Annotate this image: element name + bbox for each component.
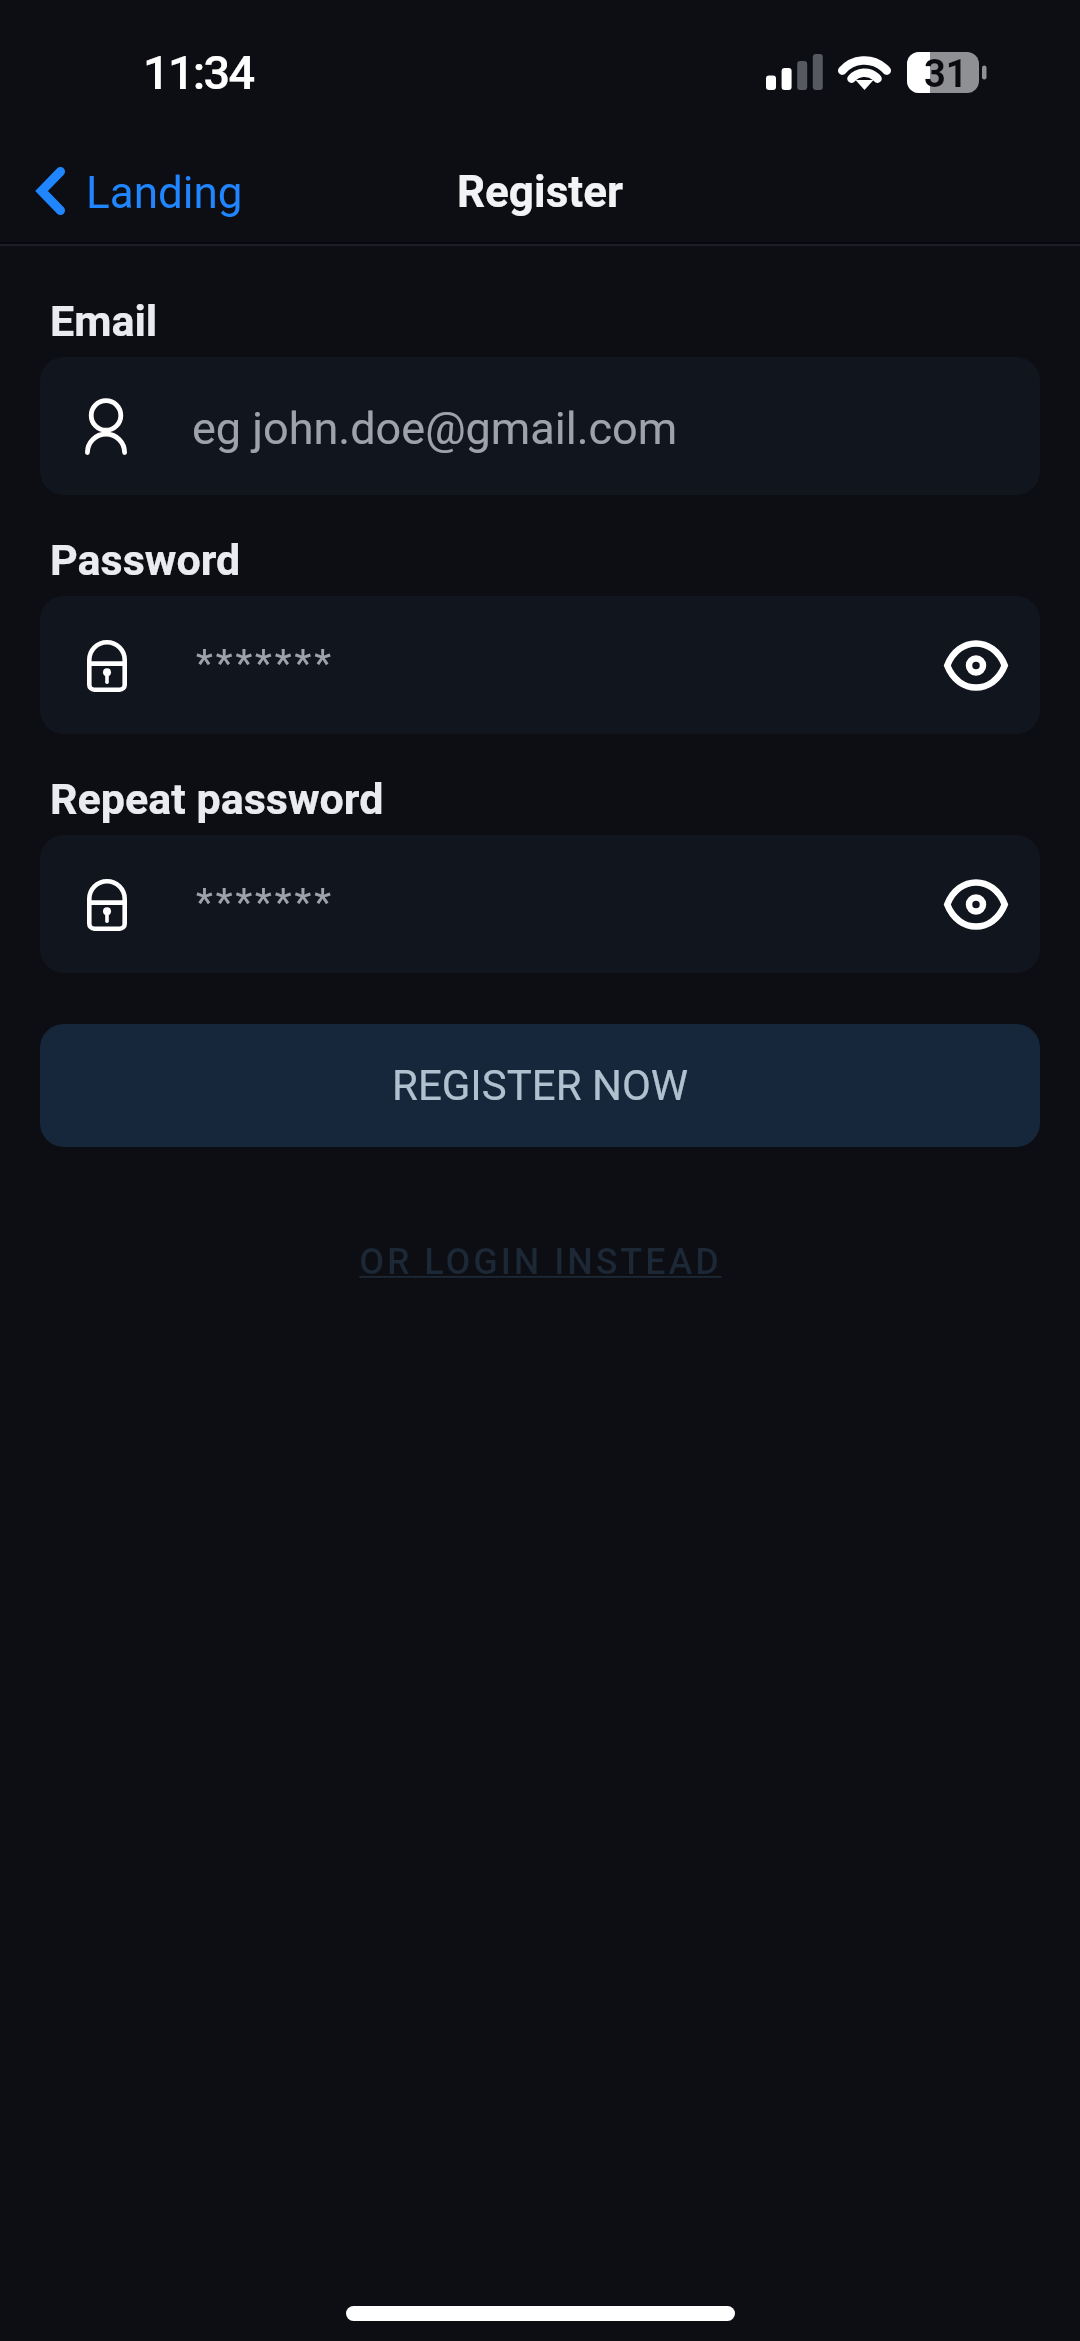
staticText: Email <box>50 296 158 346</box>
button[interactable]: eg john.doe@gmail.com <box>40 357 1040 495</box>
staticText: ******* <box>196 641 334 687</box>
staticText: ******* <box>196 880 334 926</box>
staticText: Landing <box>86 167 243 219</box>
staticText: 11:34 <box>143 45 254 100</box>
staticText: eg john.doe@gmail.com <box>192 402 678 455</box>
button[interactable]: ******* <box>40 835 1040 973</box>
staticText: Register <box>457 166 624 218</box>
button[interactable]: Show password <box>926 615 1026 715</box>
staticText: REGISTER NOW <box>392 1061 689 1110</box>
button[interactable]: REGISTER NOW <box>40 1024 1040 1147</box>
button[interactable]: ******* <box>40 596 1040 734</box>
button[interactable]: OR LOGIN INSTEAD <box>339 1231 742 1293</box>
button[interactable]: Back to Landing <box>29 155 251 227</box>
button[interactable]: Show password <box>926 854 1026 954</box>
staticText: Password <box>50 535 241 585</box>
staticText: 31 <box>924 52 968 93</box>
staticText: Repeat password <box>50 774 384 824</box>
